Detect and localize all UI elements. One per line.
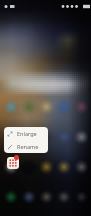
- button[interactable]: Calculator app: [7, 157, 19, 169]
- button[interactable]: Rename: [4, 140, 48, 153]
- staticText: Rename: [17, 143, 39, 150]
- button[interactable]: Enlarge: [4, 127, 48, 140]
- staticText: Enlarge: [17, 130, 37, 137]
